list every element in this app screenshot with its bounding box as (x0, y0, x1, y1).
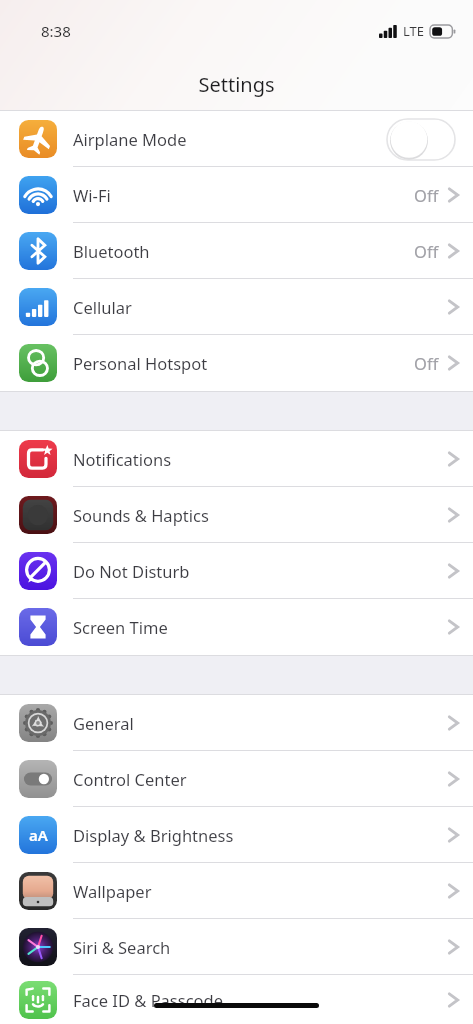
button[interactable]: aA (0, 807, 473, 863)
staticText: Off (414, 240, 439, 262)
button[interactable]: Wallpaper (0, 863, 473, 919)
button[interactable]: Sounds & Haptics (0, 487, 473, 543)
staticText: Cellular (73, 296, 132, 318)
staticText: General (73, 712, 134, 734)
button[interactable]: Screen Time (0, 599, 473, 655)
staticText: Airplane Mode (73, 128, 187, 150)
button[interactable]: Do Not Disturb (0, 543, 473, 599)
staticText: Display & Brightness (73, 824, 234, 846)
button[interactable]: Airplane Mode toggle, off (384, 117, 457, 161)
button[interactable]: Control Center (0, 751, 473, 807)
staticText: Screen Time (73, 616, 168, 638)
button[interactable]: Personal Hotspot (0, 335, 473, 391)
staticText: Do Not Disturb (73, 560, 190, 582)
staticText: Off (414, 184, 439, 206)
button[interactable]: Bluetooth (0, 223, 473, 279)
staticText: Personal Hotspot (73, 352, 208, 374)
button[interactable]: General (0, 695, 473, 751)
staticText: aA (29, 825, 48, 845)
staticText: Face ID & Passcode (73, 989, 224, 1011)
button[interactable]: Face ID & Passcode (0, 975, 473, 1024)
button[interactable]: Airplane Mode (0, 111, 473, 167)
staticText: Off (414, 352, 439, 374)
staticText: LTE (403, 22, 425, 40)
button[interactable]: Siri & Search (0, 919, 473, 975)
staticText: Settings (198, 71, 275, 98)
button[interactable]: Wi-Fi (0, 167, 473, 223)
button[interactable]: Notifications (0, 431, 473, 487)
staticText: Wi-Fi (73, 184, 111, 206)
staticText: Notifications (73, 448, 172, 470)
staticText: Siri & Search (73, 936, 171, 958)
staticText: Control Center (73, 768, 187, 790)
staticText: Bluetooth (73, 240, 150, 262)
button[interactable]: Cellular (0, 279, 473, 335)
staticText: Sounds & Haptics (73, 504, 209, 526)
staticText: 8:38 (41, 21, 71, 41)
staticText: Wallpaper (73, 880, 152, 902)
